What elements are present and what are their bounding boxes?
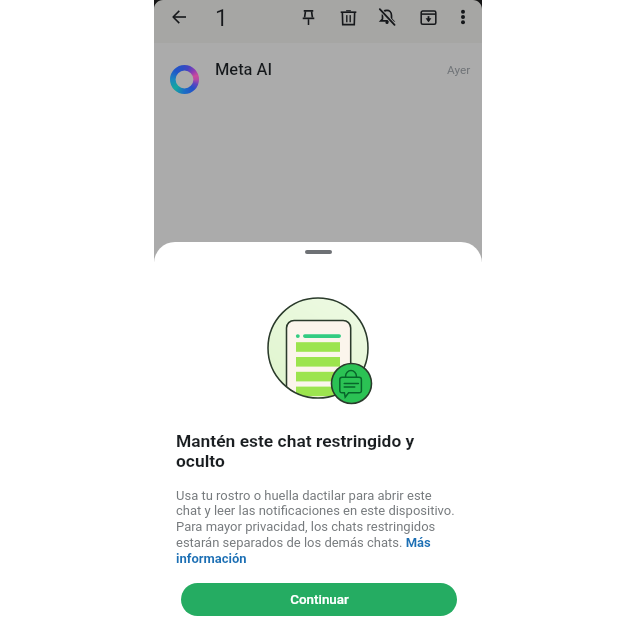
button[interactable]: More options: [450, 4, 476, 30]
button[interactable]: Back: [166, 4, 192, 30]
button[interactable]: Continuar: [181, 583, 457, 616]
staticText: Usa tu rostro o huella dactilar para abr…: [176, 488, 458, 567]
button[interactable]: Meta AI: [154, 43, 482, 115]
button[interactable]: Mute notifications: [374, 4, 400, 30]
staticText: Continuar: [290, 592, 349, 608]
staticText: 1: [215, 5, 228, 32]
button[interactable]: Delete: [335, 4, 361, 30]
staticText: Meta AI: [215, 60, 273, 79]
staticText: Mantén este chat restringido y oculto: [176, 431, 426, 471]
staticText: Ayer: [447, 63, 471, 77]
button[interactable]: Archive: [415, 4, 441, 30]
button[interactable]: Pin: [295, 4, 321, 30]
